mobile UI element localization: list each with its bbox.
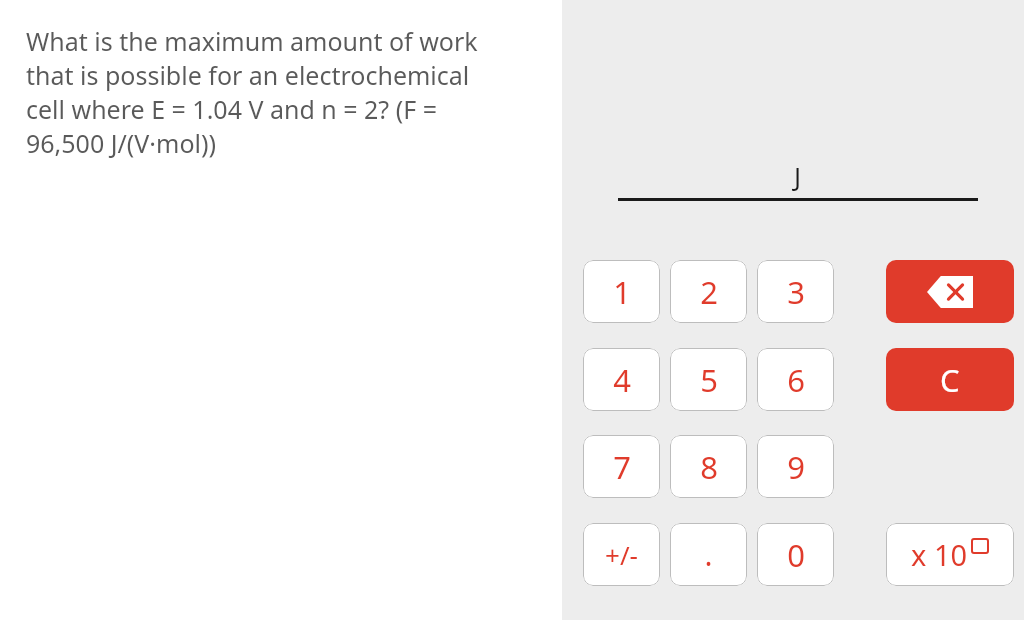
- button[interactable]: 3: [757, 260, 834, 323]
- button[interactable]: 5: [670, 348, 747, 411]
- staticText: 4: [613, 359, 631, 401]
- staticText: 2: [700, 271, 718, 313]
- staticText: 7: [613, 446, 631, 488]
- staticText: J: [794, 158, 802, 193]
- button[interactable]: 4: [583, 348, 660, 411]
- button[interactable]: 7: [583, 435, 660, 498]
- button[interactable]: Backspace: [886, 260, 1014, 323]
- button[interactable]: 6: [757, 348, 834, 411]
- button[interactable]: 2: [670, 260, 747, 323]
- staticText: 3: [787, 271, 805, 313]
- button[interactable]: 0: [757, 523, 834, 586]
- staticText: 0: [787, 534, 805, 576]
- staticText: 1: [613, 271, 631, 313]
- button[interactable]: x 10: [886, 523, 1014, 586]
- button[interactable]: C: [886, 348, 1014, 411]
- staticText: 6: [787, 359, 805, 401]
- button[interactable]: 1: [583, 260, 660, 323]
- button[interactable]: 8: [670, 435, 747, 498]
- staticText: .: [704, 534, 713, 575]
- button[interactable]: +/-: [583, 523, 660, 586]
- staticText: 8: [700, 446, 718, 488]
- staticText: +/-: [605, 537, 638, 572]
- button[interactable]: 9: [757, 435, 834, 498]
- staticText: 9: [787, 446, 805, 488]
- staticText: What is the maximum amount of work that …: [26, 24, 512, 160]
- staticText: x 10: [911, 535, 968, 574]
- staticText: 5: [700, 359, 718, 401]
- button[interactable]: .: [670, 523, 747, 586]
- staticText: C: [940, 359, 960, 401]
